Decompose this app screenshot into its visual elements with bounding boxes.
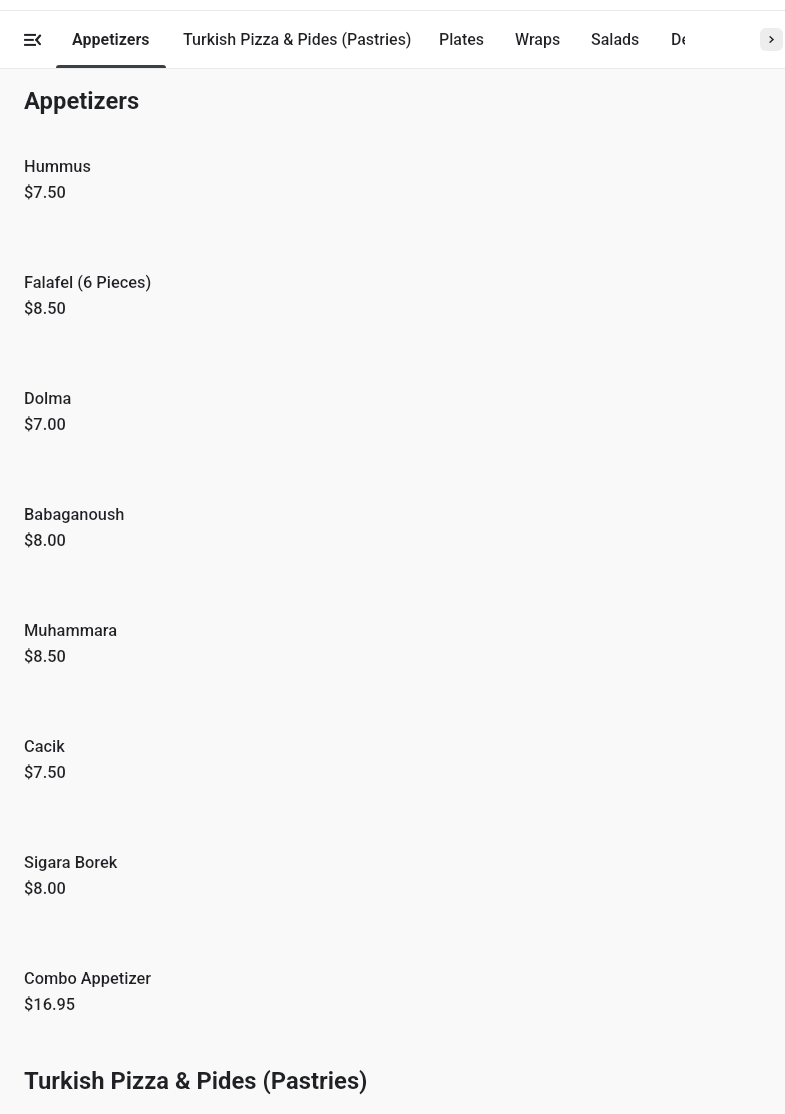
staticText: Dolma bbox=[24, 389, 72, 408]
button[interactable]: Dolma bbox=[0, 376, 785, 492]
button[interactable]: Babaganoush bbox=[0, 492, 785, 608]
staticText: Cacik bbox=[24, 737, 65, 756]
button[interactable]: Appetizers bbox=[52, 11, 170, 68]
button[interactable]: Salads bbox=[575, 11, 655, 68]
staticText: Sigara Borek bbox=[24, 853, 118, 872]
staticText: Plates bbox=[439, 30, 485, 49]
button[interactable]: Sigara Borek bbox=[0, 840, 785, 956]
staticText: $7.00 bbox=[24, 415, 66, 434]
button[interactable]: Desserts bbox=[655, 11, 685, 68]
staticText: Wraps bbox=[515, 30, 561, 49]
button[interactable]: Cacik bbox=[0, 724, 785, 840]
staticText: Muhammara bbox=[24, 621, 118, 640]
staticText: Turkish Pizza & Pides (Pastries) bbox=[24, 1067, 368, 1095]
staticText: $8.00 bbox=[24, 531, 66, 550]
staticText: $7.50 bbox=[24, 183, 66, 202]
staticText: Appetizers bbox=[72, 30, 150, 49]
button[interactable]: Open navigation menu bbox=[0, 11, 52, 68]
staticText: $7.50 bbox=[24, 763, 66, 782]
staticText: $16.95 bbox=[24, 995, 76, 1014]
staticText: $8.50 bbox=[24, 647, 66, 666]
staticText: Turkish Pizza & Pides (Pastries) bbox=[183, 30, 412, 49]
staticText: Hummus bbox=[24, 157, 91, 176]
staticText: Salads bbox=[591, 30, 640, 49]
button[interactable]: Hummus bbox=[0, 144, 785, 260]
staticText: Appetizers bbox=[24, 87, 140, 115]
button[interactable]: Turkish Pizza & Pides (Pastries) bbox=[170, 11, 424, 68]
button[interactable]: Scroll categories forward bbox=[760, 28, 783, 51]
button[interactable]: Falafel (6 Pieces) bbox=[0, 260, 785, 376]
staticText: Babaganoush bbox=[24, 505, 125, 524]
staticText: Combo Appetizer bbox=[24, 969, 152, 988]
button[interactable]: Combo Appetizer bbox=[0, 956, 785, 1072]
staticText: Falafel (6 Pieces) bbox=[24, 273, 152, 292]
staticText: $8.00 bbox=[24, 879, 66, 898]
button[interactable]: Plates bbox=[424, 11, 500, 68]
staticText: $8.50 bbox=[24, 299, 66, 318]
staticText: Desserts bbox=[671, 30, 685, 49]
button[interactable]: Muhammara bbox=[0, 608, 785, 724]
button[interactable]: Wraps bbox=[500, 11, 575, 68]
